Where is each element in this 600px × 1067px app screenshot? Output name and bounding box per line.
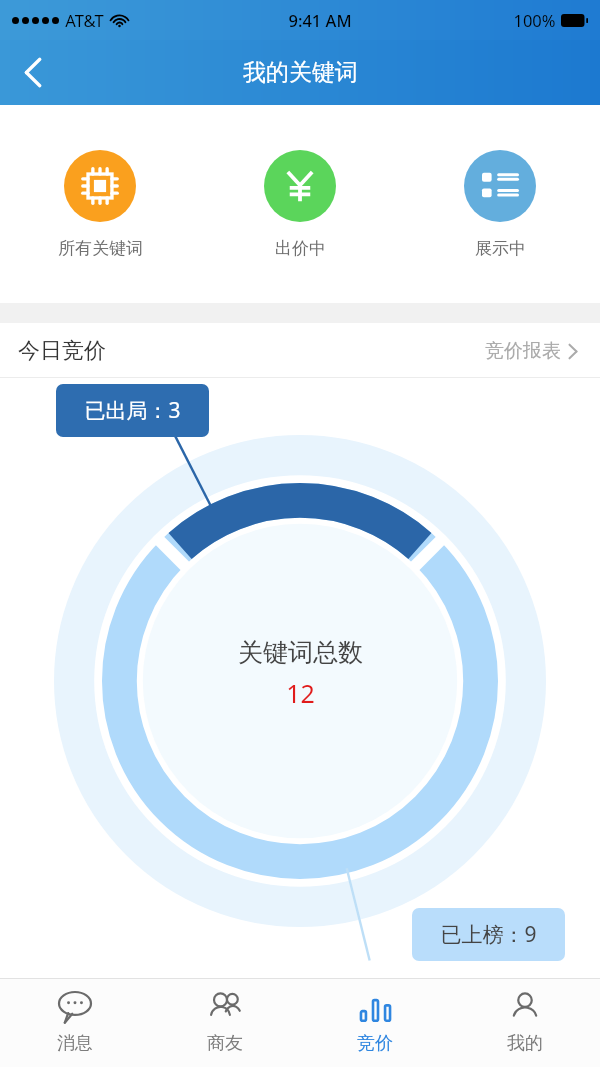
button[interactable]: 出价中 — [200, 105, 400, 303]
button[interactable]: 展示中 — [400, 105, 600, 303]
staticText: AT&T — [65, 9, 104, 31]
button[interactable]: Back — [0, 40, 66, 105]
staticText: 所有关键词 — [58, 238, 143, 259]
staticText: 我的关键词 — [243, 58, 358, 87]
button[interactable]: 所有关键词 — [0, 105, 200, 303]
staticText: 已上榜：9 — [440, 920, 537, 949]
staticText: 100% — [513, 9, 556, 31]
staticText: 竞价报表 — [485, 339, 561, 363]
staticText: 竞价 — [357, 1032, 393, 1055]
button[interactable]: 竞价报表 — [481, 335, 582, 367]
button[interactable]: 商友 — [150, 979, 300, 1067]
staticText: 商友 — [207, 1032, 243, 1055]
staticText: 12 — [286, 676, 315, 710]
button[interactable]: 消息 — [0, 979, 150, 1067]
staticText: 9:41 AM — [288, 9, 352, 31]
staticText: 关键词总数 — [238, 637, 363, 668]
button[interactable]: 已上榜：9 — [412, 908, 565, 961]
staticText: 今日竞价 — [18, 337, 106, 365]
button[interactable]: 已出局：3 — [56, 384, 209, 437]
staticText: 消息 — [57, 1032, 93, 1055]
staticText: 已出局：3 — [84, 396, 181, 425]
staticText: 出价中 — [275, 238, 326, 259]
button[interactable]: 我的 — [450, 979, 600, 1067]
staticText: 我的 — [507, 1032, 543, 1055]
staticText: 展示中 — [475, 238, 526, 259]
button[interactable]: 竞价 — [300, 979, 450, 1067]
